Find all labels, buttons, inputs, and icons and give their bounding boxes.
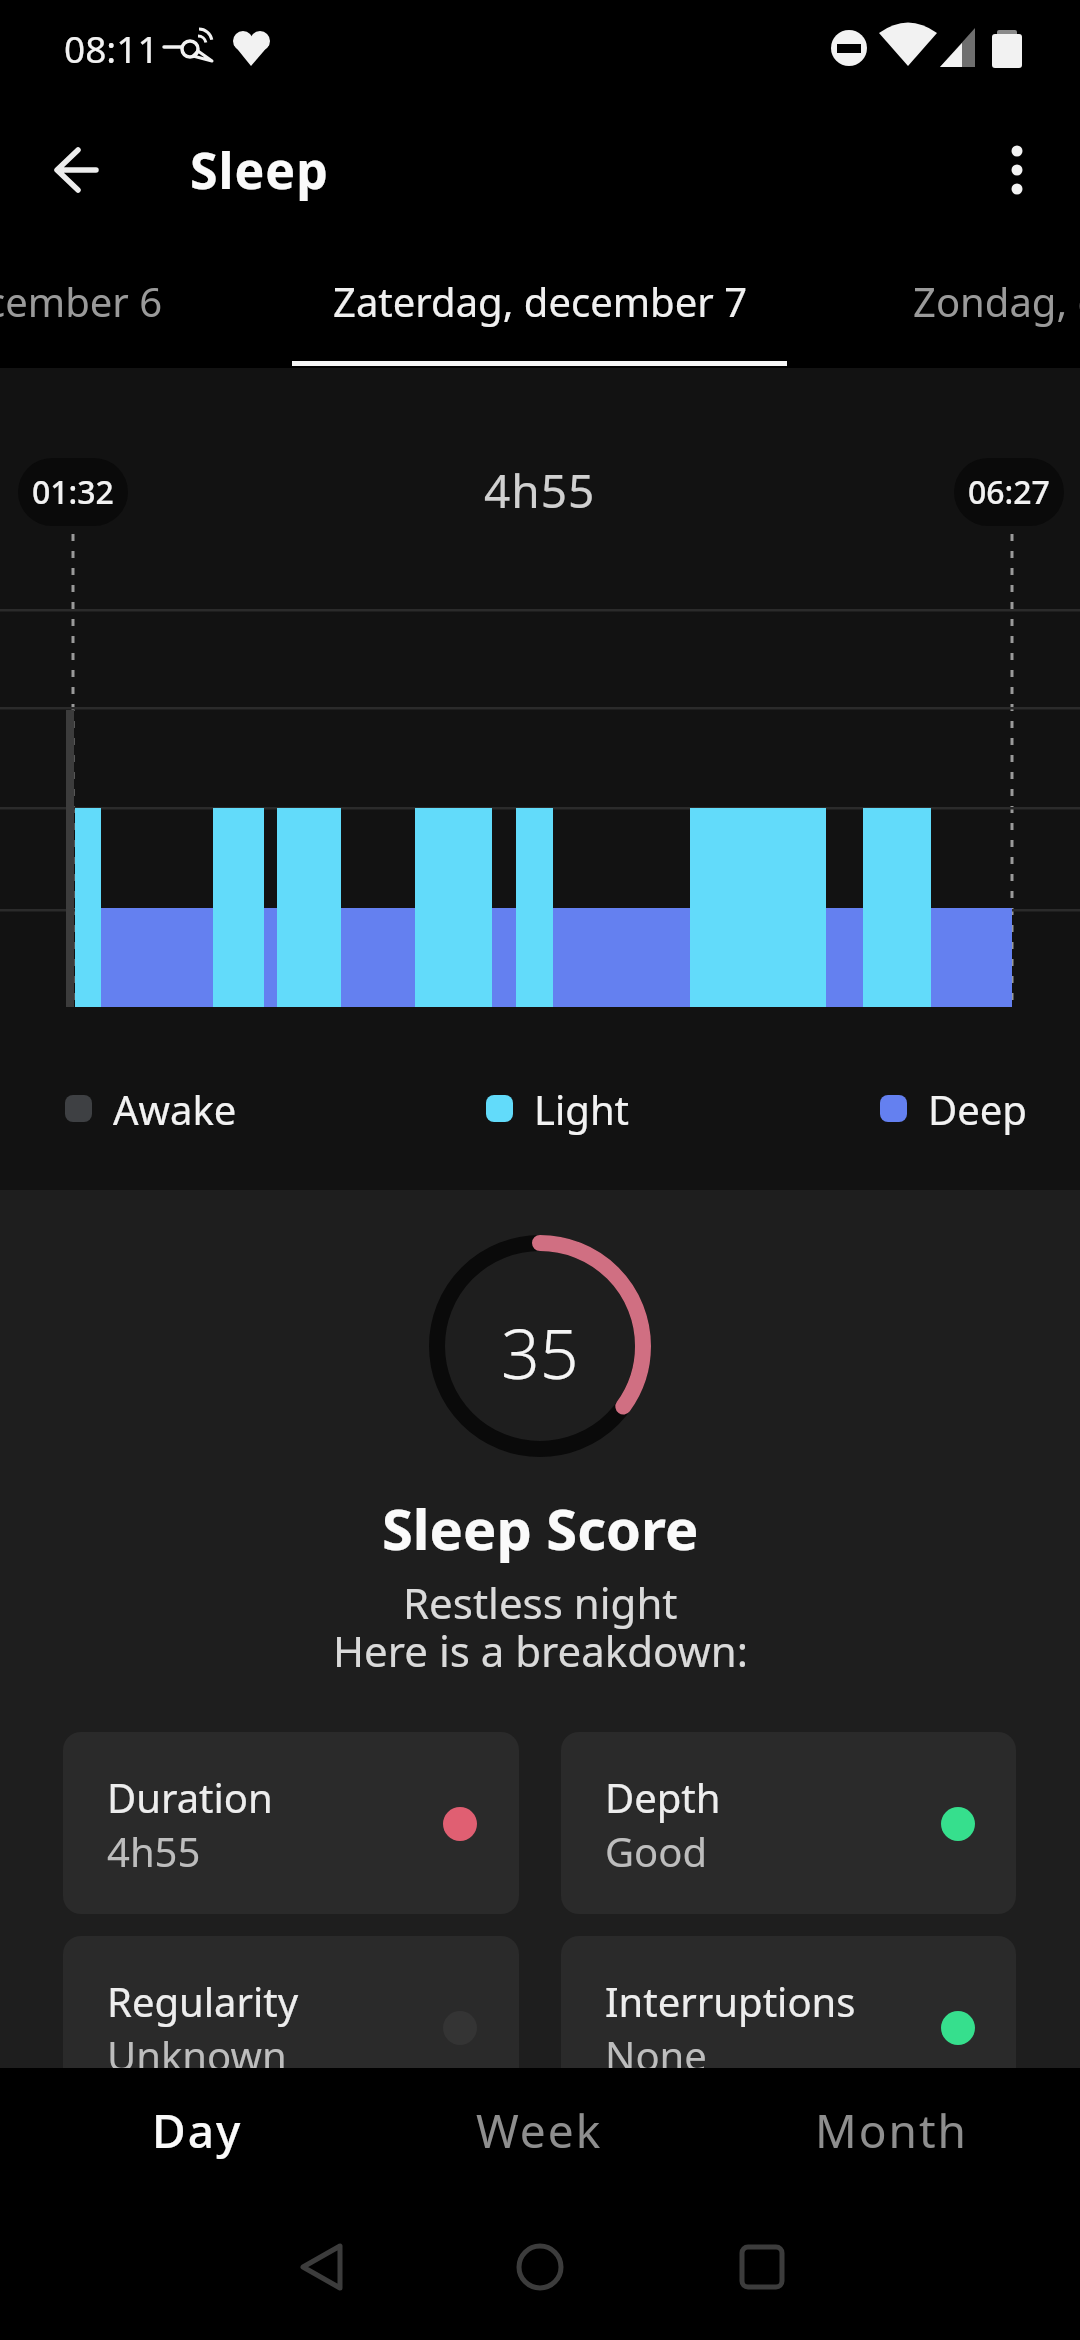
staticText: 4h55 <box>484 459 596 522</box>
staticText: 4h55 <box>107 1824 201 1878</box>
staticText: Unknown <box>107 2028 287 2082</box>
staticText: Awake <box>113 1082 237 1136</box>
staticText: cember 6 <box>0 274 163 328</box>
staticText: Depth <box>605 1770 721 1824</box>
button[interactable] <box>63 1732 519 1914</box>
staticText: Day <box>152 2099 243 2162</box>
staticText: Interruptions <box>605 1974 856 2028</box>
staticText: Zondag, dec <box>913 274 1080 328</box>
staticText: Week <box>476 2099 603 2162</box>
button[interactable] <box>561 1732 1016 1914</box>
button[interactable] <box>0 255 230 370</box>
staticText: 06:27 <box>968 470 1050 514</box>
staticText: Sleep <box>190 136 329 204</box>
staticText: Deep <box>928 1082 1027 1136</box>
button[interactable] <box>80 2068 310 2193</box>
staticText: Light <box>534 1082 630 1136</box>
button[interactable] <box>30 125 122 215</box>
staticText: Good <box>605 1824 708 1878</box>
staticText: 35 <box>501 1306 579 1386</box>
staticText: Sleep Score <box>382 1490 699 1566</box>
staticText: 08:11 <box>64 23 159 73</box>
staticText: Month <box>815 2099 969 2162</box>
button[interactable] <box>425 2068 655 2193</box>
staticText: None <box>605 2028 707 2082</box>
staticText: Duration <box>107 1770 273 1824</box>
button[interactable] <box>850 255 1080 370</box>
button[interactable] <box>770 2068 1000 2193</box>
staticText: Here is a breakdown: <box>333 1622 748 1679</box>
staticText: Restless night <box>403 1574 678 1631</box>
staticText: 01:32 <box>32 470 114 514</box>
staticText: Zaterdag, december 7 <box>333 274 748 328</box>
button[interactable] <box>972 125 1062 215</box>
button[interactable] <box>270 255 810 370</box>
button[interactable] <box>63 1936 519 2118</box>
button[interactable] <box>561 1936 1016 2118</box>
staticText: Regularity <box>107 1974 299 2028</box>
